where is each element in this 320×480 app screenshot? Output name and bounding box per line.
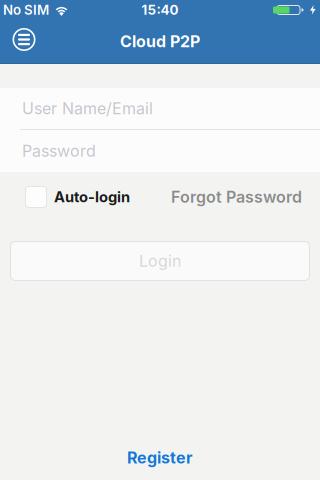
button[interactable]: Auto-login — [25, 186, 130, 208]
staticText: Register — [127, 448, 193, 467]
staticText: Auto-login — [54, 188, 130, 206]
staticText: Forgot Password — [171, 188, 302, 206]
button[interactable]: Menu — [6, 23, 42, 59]
staticText: User Name/Email — [22, 99, 153, 118]
button[interactable]: Forgot Password — [171, 188, 302, 206]
staticText: 15:40 — [141, 2, 178, 18]
staticText: Login — [139, 252, 181, 270]
staticText: No SIM — [3, 2, 49, 18]
staticText: Password — [22, 142, 96, 160]
button[interactable]: Password — [0, 130, 320, 172]
button[interactable]: User Name/Email — [0, 88, 320, 129]
button[interactable]: Login — [10, 241, 310, 281]
button[interactable]: Register — [127, 448, 193, 467]
staticText: Cloud P2P — [120, 32, 200, 51]
